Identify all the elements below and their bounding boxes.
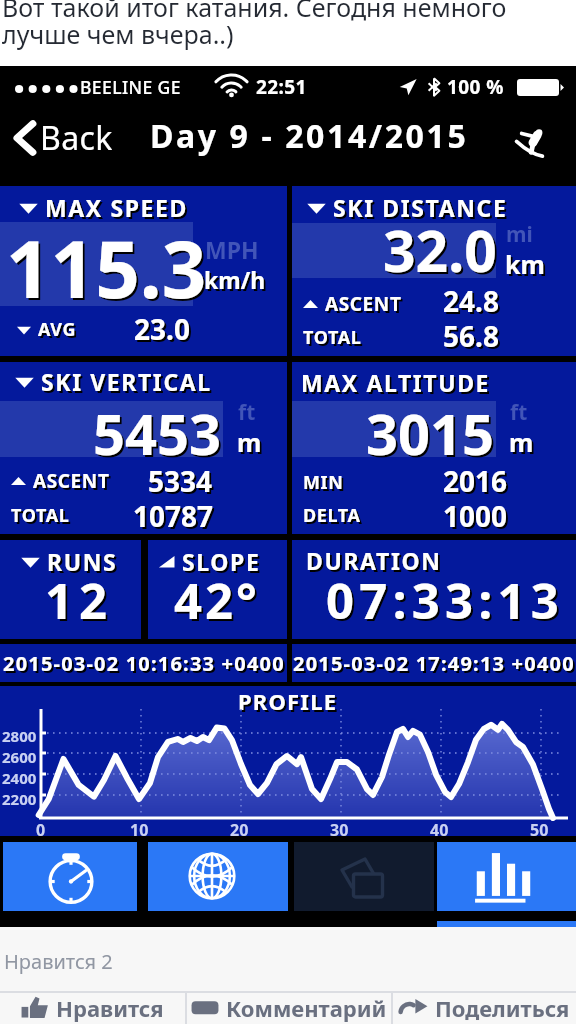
staticText: 10 <box>130 819 149 841</box>
button[interactable]: Комментарий <box>187 992 391 1024</box>
staticText: Day 9 - 2014/2015 <box>150 114 469 158</box>
button[interactable]: SKI DISTANCE <box>292 186 576 356</box>
staticText: 32.0 <box>383 211 497 289</box>
staticText: SKI DISTANCE <box>333 192 508 223</box>
staticText: 115.3 <box>6 215 207 321</box>
staticText: 56.8 <box>443 317 499 355</box>
staticText: 5334 <box>150 464 215 502</box>
staticText: 07:33:13 <box>326 567 565 634</box>
button[interactable]: Timer <box>3 842 137 911</box>
staticText: 10787 <box>133 497 214 535</box>
staticText: TOTAL <box>11 503 70 528</box>
staticText: Back <box>40 116 113 160</box>
staticText: 42° <box>174 567 260 634</box>
staticText: 10787 <box>135 499 216 537</box>
staticText: AVG <box>38 317 77 342</box>
staticText: 1000 <box>443 497 508 535</box>
staticText: 3015 <box>366 395 495 471</box>
staticText: 50 <box>530 819 549 841</box>
staticText: Вот такой итог катания. Сегодня немного <box>2 0 507 24</box>
staticText: SKI VERTICAL <box>41 366 212 397</box>
staticText: DURATION <box>306 545 442 576</box>
staticText: 30 <box>330 819 349 841</box>
staticText: 0 <box>36 819 46 841</box>
staticText: ASCENT <box>35 470 112 496</box>
staticText: PROFILE <box>238 686 338 716</box>
staticText: PROFILE <box>240 688 340 718</box>
staticText: m <box>509 425 534 459</box>
staticText: 5334 <box>148 462 213 500</box>
button[interactable]: Statistics <box>437 842 576 911</box>
staticText: m <box>511 427 536 461</box>
staticText: Комментарий <box>226 993 387 1023</box>
staticText: BEELINE GE <box>80 75 181 99</box>
staticText: MPH <box>205 234 259 265</box>
button[interactable]: Map <box>148 842 288 911</box>
staticText: 12 <box>47 569 116 636</box>
staticText: TOTAL <box>303 325 362 350</box>
staticText: MAX ALTITUDE <box>303 369 493 400</box>
button[interactable]: Нравится <box>0 992 185 1024</box>
button[interactable]: DURATION <box>292 540 576 639</box>
staticText: ft <box>238 398 256 427</box>
staticText: Нравится 2 <box>4 948 113 975</box>
button[interactable]: SLOPE <box>148 540 287 639</box>
staticText: 3015 <box>368 397 497 473</box>
staticText: SKI DISTANCE <box>335 194 510 225</box>
staticText: 2016 <box>443 462 508 500</box>
button[interactable]: MAX ALTITUDE <box>292 362 576 534</box>
staticText: лучше чем вчера..) <box>2 17 234 51</box>
staticText: 22:51 <box>256 74 307 100</box>
staticText: 2015-03-02 17:49:13 +0400 <box>293 650 575 677</box>
button[interactable]: Ski activity <box>504 119 554 169</box>
staticText: SLOPE <box>184 548 263 579</box>
button[interactable]: MAX SPEED <box>0 186 287 356</box>
staticText: km/h <box>206 266 268 297</box>
staticText: mi <box>506 220 533 249</box>
staticText: ASCENT <box>33 468 110 494</box>
staticText: km <box>507 249 547 283</box>
staticText: 115.3 <box>8 217 209 323</box>
staticText: 32.0 <box>385 213 499 291</box>
staticText: 2400 <box>2 768 37 788</box>
staticText: 2016 <box>445 464 510 502</box>
staticText: 42° <box>176 569 262 636</box>
staticText: m <box>239 427 264 461</box>
staticText: 2015-03-02 17:49:13 +0400 <box>295 652 576 679</box>
button[interactable]: Back <box>14 116 113 160</box>
staticText: 2015-03-02 10:16:33 +0400 <box>3 650 285 677</box>
staticText: SLOPE <box>182 546 261 577</box>
staticText: DELTA <box>305 505 363 530</box>
staticText: MIN <box>305 472 346 497</box>
staticText: km <box>505 247 545 281</box>
button[interactable]: Photos <box>294 842 434 911</box>
staticText: 5453 <box>95 397 224 473</box>
staticText: 56.8 <box>445 319 501 357</box>
button[interactable]: SKI VERTICAL <box>0 362 287 534</box>
staticText: 23.0 <box>134 310 190 348</box>
staticText: DELTA <box>303 503 361 528</box>
staticText: 23.0 <box>136 312 192 350</box>
staticText: Нравится <box>56 993 164 1023</box>
staticText: MAX SPEED <box>47 194 190 225</box>
staticText: 2015-03-02 10:16:33 +0400 <box>5 652 287 679</box>
button[interactable]: 2015-03-02 17:49:13 +0400 <box>292 644 576 682</box>
staticText: 5453 <box>93 395 222 471</box>
staticText: DURATION <box>308 547 444 578</box>
staticText: TOTAL <box>305 327 364 352</box>
staticText: MIN <box>303 470 344 495</box>
staticText: 24.8 <box>443 282 499 320</box>
button[interactable]: Поделиться <box>393 992 576 1024</box>
button[interactable]: RUNS <box>0 540 141 639</box>
button[interactable]: 2015-03-02 10:16:33 +0400 <box>0 644 287 682</box>
staticText: 12 <box>45 567 114 634</box>
staticText: 2800 <box>2 726 37 746</box>
staticText: ASCENT <box>325 291 402 317</box>
staticText: 07:33:13 <box>328 569 567 636</box>
staticText: 2600 <box>2 747 37 767</box>
staticText: MAX ALTITUDE <box>301 367 491 398</box>
staticText: AVG <box>40 319 79 344</box>
staticText: km/h <box>204 264 266 295</box>
staticText: Поделиться <box>435 993 570 1023</box>
staticText: 20 <box>230 819 249 841</box>
